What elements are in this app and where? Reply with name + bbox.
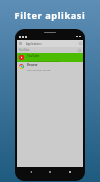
button[interactable]: Search xyxy=(78,40,83,47)
staticText: YouTube xyxy=(27,54,40,58)
button[interactable]: Home xyxy=(46,168,54,176)
button[interactable]: Recents xyxy=(66,168,74,176)
button[interactable]: More options xyxy=(78,49,81,52)
button[interactable]: Browse xyxy=(17,62,83,71)
staticText: Browse xyxy=(27,63,38,67)
staticText: Filter aplikasi xyxy=(0,9,100,22)
button[interactable]: Back xyxy=(27,168,35,176)
staticText: com.google.android.youtube xyxy=(27,59,60,62)
staticText: Applications xyxy=(26,42,42,46)
button[interactable]: YouTube xyxy=(17,53,83,62)
staticText: YouTube xyxy=(19,48,30,52)
staticText: com.android.chrome xyxy=(27,68,51,71)
button[interactable]: Menu xyxy=(17,40,23,47)
